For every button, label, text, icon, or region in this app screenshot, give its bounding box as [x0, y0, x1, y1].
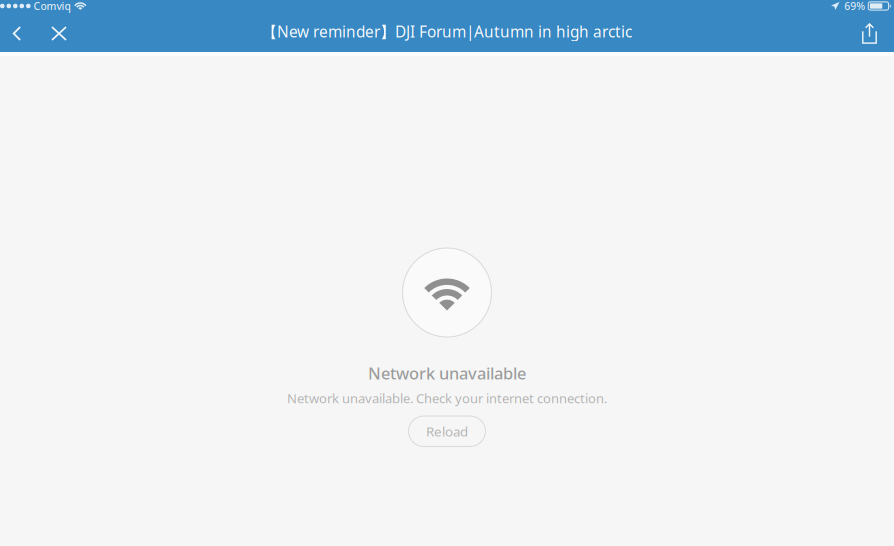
staticText: 【New reminder】DJI Forum|Autumn in high a…: [262, 21, 632, 42]
staticText: 69%: [844, 0, 865, 13]
button[interactable]: Close: [33, 15, 85, 52]
button[interactable]: Share: [852, 15, 887, 52]
staticText: Comviq: [34, 0, 71, 13]
staticText: Network unavailable. Check your internet…: [287, 389, 607, 407]
staticText: Network unavailable: [368, 362, 526, 384]
button[interactable]: Reload: [408, 416, 485, 446]
staticText: Reload: [426, 422, 468, 440]
button[interactable]: Back: [1, 15, 33, 52]
